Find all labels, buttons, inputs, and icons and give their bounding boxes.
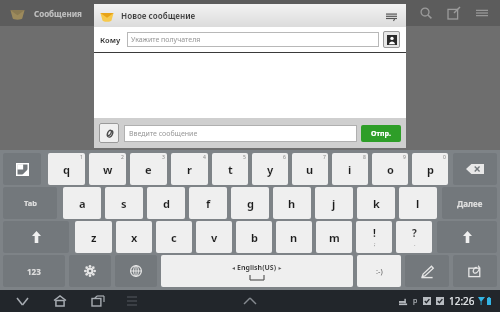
- staticText: Кому: [100, 35, 121, 45]
- staticText: u: [306, 162, 314, 177]
- button[interactable]: i: [332, 153, 368, 185]
- staticText: Введите сообщение: [129, 129, 198, 139]
- button[interactable]: w: [89, 153, 126, 185]
- button[interactable]: h: [273, 187, 311, 219]
- staticText: 1: [80, 154, 83, 161]
- staticText: ◂: [232, 264, 237, 272]
- staticText: b: [251, 230, 258, 245]
- staticText: 8: [363, 154, 366, 161]
- staticText: 5: [243, 154, 246, 161]
- staticText: r: [187, 162, 192, 177]
- button[interactable]: c: [156, 221, 192, 253]
- staticText: Отпр.: [371, 129, 391, 139]
- button[interactable]: l: [399, 187, 437, 219]
- button[interactable]: d: [147, 187, 185, 219]
- button[interactable]: j: [315, 187, 353, 219]
- staticText: 3: [162, 154, 165, 161]
- staticText: a: [79, 196, 86, 211]
- staticText: English(US): [237, 263, 277, 273]
- button[interactable]: g: [231, 187, 269, 219]
- button[interactable]: Отпр.: [361, 125, 401, 142]
- button[interactable]: Handwriting: [405, 255, 449, 287]
- button[interactable]: Search: [416, 3, 436, 23]
- staticText: Tab: [24, 198, 37, 208]
- staticText: 9: [403, 154, 406, 161]
- button[interactable]: More options: [472, 3, 492, 23]
- button[interactable]: Settings: [69, 255, 111, 287]
- staticText: Далее: [457, 198, 483, 209]
- staticText: ▸: [277, 264, 282, 272]
- staticText: !: [373, 226, 376, 240]
- staticText: x: [131, 230, 138, 245]
- button[interactable]: z: [75, 221, 112, 253]
- button[interactable]: Back: [10, 290, 34, 312]
- staticText: Укажите получателя: [131, 35, 201, 45]
- button[interactable]: 123: [3, 255, 65, 287]
- button[interactable]: a: [63, 187, 101, 219]
- staticText: 4: [203, 154, 206, 161]
- staticText: t: [228, 162, 233, 177]
- staticText: 123: [27, 266, 41, 277]
- button[interactable]: Attach: [99, 123, 119, 143]
- button[interactable]: Далее: [442, 187, 497, 219]
- staticText: w: [103, 162, 113, 177]
- staticText: .: [414, 240, 416, 248]
- staticText: Сообщения: [34, 8, 82, 19]
- staticText: l: [416, 196, 420, 211]
- button[interactable]: Options: [382, 7, 400, 25]
- staticText: c: [171, 230, 177, 245]
- staticText: e: [145, 162, 152, 177]
- button[interactable]: Shift: [3, 221, 69, 253]
- button[interactable]: [8, 4, 26, 22]
- button[interactable]: Shift: [437, 221, 497, 253]
- button[interactable]: :-): [357, 255, 401, 287]
- button[interactable]: e: [130, 153, 167, 185]
- button[interactable]: Recents: [86, 290, 110, 312]
- button[interactable]: n: [276, 221, 312, 253]
- button[interactable]: o: [372, 153, 408, 185]
- button[interactable]: Tab: [3, 187, 57, 219]
- staticText: 6: [283, 154, 286, 161]
- staticText: g: [247, 196, 254, 211]
- button[interactable]: Change language: [115, 255, 157, 287]
- button[interactable]: New message: [444, 3, 464, 23]
- button[interactable]: Space: [161, 255, 353, 287]
- staticText: 2: [121, 154, 124, 161]
- button[interactable]: u: [292, 153, 328, 185]
- staticText: 0: [443, 154, 446, 161]
- button[interactable]: Clipboard: [453, 255, 497, 287]
- button[interactable]: p: [412, 153, 448, 185]
- button[interactable]: !: [356, 221, 392, 253]
- staticText: d: [163, 196, 170, 211]
- button[interactable]: m: [316, 221, 352, 253]
- staticText: h: [288, 196, 296, 211]
- staticText: o: [387, 162, 394, 177]
- button[interactable]: x: [116, 221, 152, 253]
- staticText: Новое сообщение: [121, 10, 196, 21]
- button[interactable]: f: [189, 187, 227, 219]
- button[interactable]: Backspace: [453, 153, 497, 185]
- button[interactable]: Hide keyboard: [122, 291, 142, 311]
- button[interactable]: Minimize keyboard: [3, 153, 41, 185]
- button[interactable]: v: [196, 221, 232, 253]
- staticText: q: [63, 162, 70, 177]
- button[interactable]: y: [252, 153, 288, 185]
- staticText: z: [91, 230, 97, 245]
- staticText: k: [373, 196, 380, 211]
- button[interactable]: ?: [396, 221, 432, 253]
- button[interactable]: q: [48, 153, 85, 185]
- button[interactable]: s: [105, 187, 143, 219]
- staticText: 12:26: [449, 294, 475, 308]
- button[interactable]: Choose contact: [383, 31, 400, 48]
- staticText: :-): [376, 266, 383, 276]
- button[interactable]: Введите сообщение: [124, 125, 357, 142]
- button[interactable]: k: [357, 187, 395, 219]
- button[interactable]: Укажите получателя: [127, 32, 379, 47]
- button[interactable]: b: [236, 221, 272, 253]
- button[interactable]: r: [171, 153, 208, 185]
- button[interactable]: Home: [48, 290, 72, 312]
- button[interactable]: t: [212, 153, 248, 185]
- staticText: v: [211, 230, 218, 245]
